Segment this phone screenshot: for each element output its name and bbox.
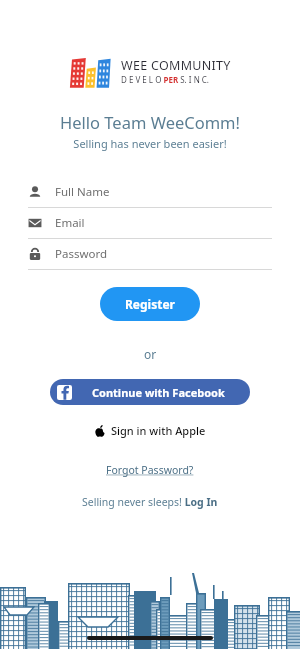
staticText: Email — [55, 215, 85, 231]
button[interactable]: Register — [100, 287, 200, 321]
button[interactable]: Forgot Password? — [102, 459, 198, 481]
staticText: Selling never sleeps! Log In — [82, 495, 218, 509]
staticText: or — [144, 346, 157, 362]
button[interactable]: Selling never sleeps! Log In — [79, 492, 221, 512]
staticText: Password — [55, 246, 108, 262]
staticText: Register — [125, 296, 175, 312]
button[interactable]: Sign in with Apple — [68, 417, 232, 443]
staticText: Hello Team WeeComm! — [60, 111, 240, 133]
button[interactable]: Continue with Facebook — [50, 379, 250, 405]
button[interactable]: Password — [28, 239, 272, 269]
staticText: Selling has never been easier! — [73, 136, 227, 151]
staticText: Forgot Password? — [106, 463, 194, 477]
staticText: WEE COMMUNITY — [121, 57, 231, 74]
staticText: Continue with Facebook — [92, 385, 225, 400]
staticText: D E V E L O PER S. I N C. — [121, 74, 209, 85]
staticText: Full Name — [55, 184, 110, 200]
button[interactable]: Email — [28, 208, 272, 238]
staticText: Sign in with Apple — [111, 423, 206, 438]
button[interactable]: Full Name — [28, 177, 272, 207]
